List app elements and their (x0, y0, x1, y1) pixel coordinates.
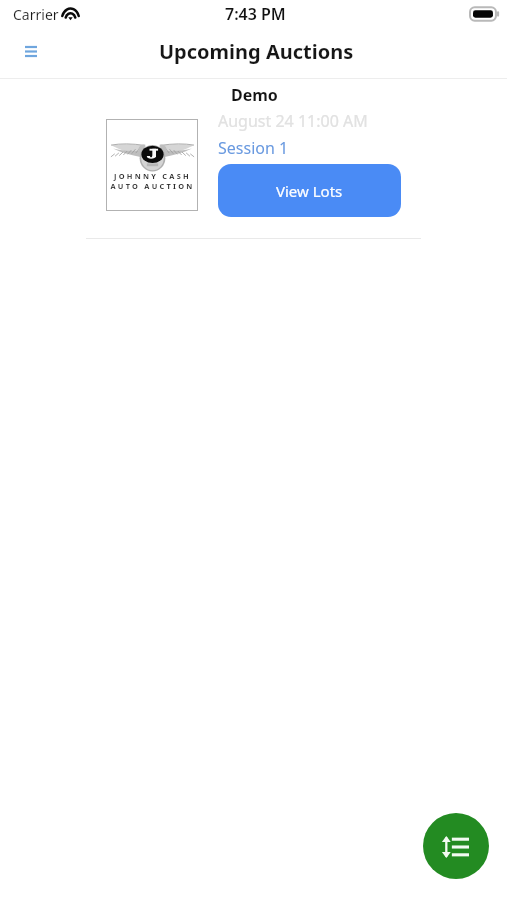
button[interactable]: Sort auctions (423, 813, 489, 879)
button[interactable]: Demo (0, 79, 507, 238)
staticText: Upcoming Auctions (159, 38, 354, 65)
staticText: Carrier (13, 5, 59, 24)
button[interactable]: Open navigation menu (13, 33, 49, 69)
staticText: AUTO AUCTION (110, 181, 195, 191)
staticText: Demo (231, 84, 278, 106)
staticText: Session 1 (218, 137, 289, 159)
button[interactable]: View Lots (218, 164, 401, 217)
staticText: JOHNNY CASH (114, 171, 191, 181)
staticText: August 24 11:00 AM (218, 110, 368, 132)
staticText: View Lots (276, 181, 343, 201)
staticText: 7:43 PM (225, 3, 286, 25)
